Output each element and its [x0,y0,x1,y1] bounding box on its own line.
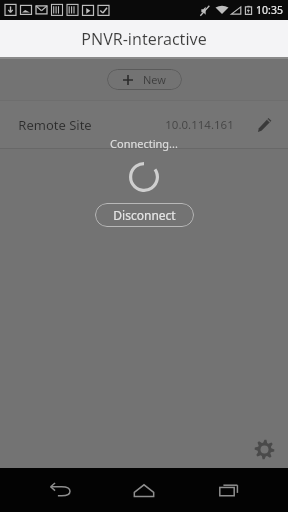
button[interactable]: Settings [250,435,278,463]
staticText: 10.0.114.161 [165,117,234,133]
button[interactable]: Home [118,470,170,510]
staticText: Disconnect [113,207,176,223]
button[interactable]: Remote Site [0,101,288,148]
button[interactable]: Disconnect [95,203,194,227]
staticText: 10:35 [256,3,283,17]
staticText: Remote Site [18,116,92,134]
button[interactable]: Recent apps [203,470,255,510]
button[interactable]: Back [33,470,85,510]
staticText: Connecting... [110,136,178,151]
staticText: PNVR-interactive [81,28,207,50]
button[interactable]: New [107,69,182,90]
button[interactable]: Edit [252,113,276,137]
staticText: New [143,72,166,87]
